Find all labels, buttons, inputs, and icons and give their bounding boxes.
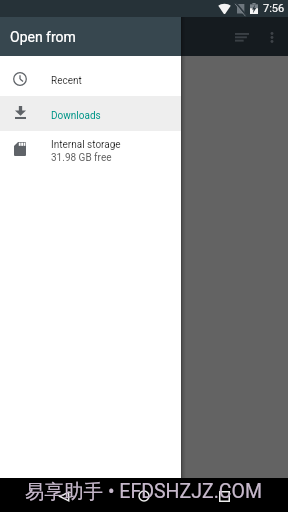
staticText: 7:56	[263, 2, 285, 15]
button[interactable]: Recent apps	[200, 479, 248, 512]
button[interactable]: Sort	[227, 22, 257, 52]
button[interactable]: Back	[40, 479, 88, 512]
button[interactable]: Home	[120, 479, 168, 512]
button[interactable]: Internal storage	[0, 131, 181, 166]
staticText: Internal storage	[51, 138, 121, 151]
button[interactable]: Recent	[0, 61, 181, 96]
button[interactable]: More options	[257, 22, 287, 52]
staticText: Downloads	[51, 109, 101, 122]
staticText: 易享助手 • EFDSHZJZ.COM	[25, 479, 262, 504]
staticText: 31.98 GB free	[51, 151, 112, 164]
staticText: Recent	[51, 74, 82, 87]
staticText: Open from	[10, 29, 76, 45]
button[interactable]: Downloads	[0, 96, 181, 131]
